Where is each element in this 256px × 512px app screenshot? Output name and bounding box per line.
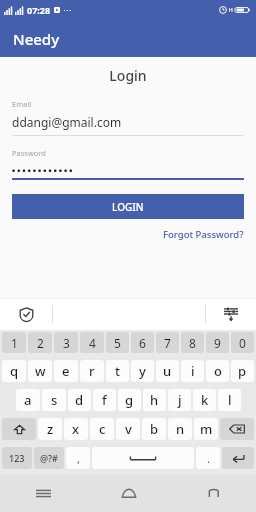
button[interactable]: 0 (231, 332, 254, 353)
button[interactable]: i (181, 360, 204, 382)
button[interactable]: o (206, 360, 229, 382)
button[interactable]: Backspace (220, 418, 254, 440)
staticText: 3 (63, 335, 70, 351)
button[interactable]: Secure input (0, 298, 52, 330)
staticText: 2 (37, 335, 44, 351)
button[interactable]: y (131, 360, 154, 382)
staticText: 0 (239, 335, 246, 351)
staticText: Email (12, 99, 32, 109)
button[interactable]: f (93, 389, 116, 411)
staticText: r (89, 362, 95, 380)
staticText: t (115, 362, 120, 380)
staticText: 9 (214, 335, 221, 351)
staticText: Login (0, 66, 256, 85)
button[interactable]: 4 (80, 332, 104, 353)
button[interactable]: b (142, 418, 166, 440)
button[interactable]: q (2, 360, 26, 382)
staticText: 6 (139, 335, 146, 351)
button[interactable]: h (143, 389, 166, 411)
staticText: Needy (13, 29, 60, 49)
button[interactable]: Back (171, 475, 256, 512)
staticText: 5 (114, 335, 121, 351)
staticText: k (201, 391, 209, 409)
staticText: H (229, 7, 233, 14)
staticText: e (62, 362, 70, 380)
staticText: h (150, 391, 159, 409)
button[interactable]: 5 (106, 332, 129, 353)
button[interactable]: 123 (2, 447, 32, 469)
button[interactable]: a (16, 389, 40, 411)
staticText: 1 (11, 335, 18, 351)
staticText: w (35, 362, 46, 380)
staticText: y (139, 362, 146, 380)
staticText: d (75, 391, 84, 409)
button[interactable]: 2 (28, 332, 52, 353)
button[interactable]: j (168, 389, 191, 411)
button[interactable]: t (106, 360, 129, 382)
button[interactable]: Recent apps (0, 475, 86, 512)
button[interactable]: Space (92, 447, 194, 469)
staticText: i (191, 362, 195, 380)
staticText: LOGIN (112, 200, 144, 214)
button[interactable]: d (68, 389, 91, 411)
button[interactable]: LOGIN (12, 194, 244, 219)
staticText: a (24, 391, 32, 409)
button[interactable]: x (64, 418, 88, 440)
staticText: 7 (164, 335, 171, 351)
button[interactable]: Forgot Password? (163, 228, 244, 241)
staticText: q (10, 362, 19, 380)
staticText: Forgot Password? (163, 228, 244, 241)
staticText: 4 (89, 335, 96, 351)
button[interactable]: w (28, 360, 52, 382)
staticText: ddangi@gmail.com (12, 114, 122, 130)
button[interactable]: e (54, 360, 78, 382)
button[interactable]: 7 (156, 332, 179, 353)
staticText: u (163, 362, 172, 380)
button[interactable]: c (90, 418, 114, 440)
button[interactable]: p (231, 360, 254, 382)
staticText: n (176, 420, 185, 438)
staticText: m (200, 420, 213, 438)
staticText: l (228, 391, 232, 409)
staticText: 07:28 (27, 4, 51, 16)
button[interactable]: m (194, 418, 218, 440)
staticText: v (125, 420, 132, 438)
button[interactable]: l (218, 389, 241, 411)
button[interactable]: u (156, 360, 179, 382)
button[interactable]: v (116, 418, 140, 440)
button[interactable]: 1 (2, 332, 26, 353)
button[interactable]: k (193, 389, 216, 411)
button[interactable]: g (118, 389, 141, 411)
button[interactable]: @?# (34, 447, 64, 469)
button[interactable]: n (168, 418, 192, 440)
staticText: b (150, 420, 159, 438)
button[interactable]: Enter (222, 447, 254, 469)
staticText: x (72, 420, 80, 438)
staticText: ⋯ (63, 6, 71, 15)
staticText: f (102, 391, 107, 409)
button[interactable]: , (66, 447, 90, 469)
button[interactable]: 9 (206, 332, 229, 353)
staticText: z (47, 420, 54, 438)
staticText: , (77, 451, 80, 466)
staticText: p (238, 362, 247, 380)
staticText: @?# (40, 452, 58, 464)
button[interactable]: 6 (131, 332, 154, 353)
staticText: s (51, 391, 58, 409)
button[interactable]: Home (86, 475, 171, 512)
button[interactable]: r (80, 360, 104, 382)
staticText: . (207, 451, 210, 466)
staticText: 8 (189, 335, 196, 351)
staticText: Password (12, 148, 46, 158)
button[interactable]: z (38, 418, 62, 440)
button[interactable]: 8 (181, 332, 204, 353)
button[interactable]: s (42, 389, 66, 411)
staticText: 123 (9, 452, 25, 464)
staticText: j (178, 391, 182, 409)
staticText: g (125, 391, 134, 409)
button[interactable]: . (196, 447, 220, 469)
button[interactable]: Shift (2, 418, 36, 440)
button[interactable]: 3 (54, 332, 78, 353)
button[interactable]: Keyboard settings (206, 298, 256, 330)
staticText: o (214, 362, 222, 380)
